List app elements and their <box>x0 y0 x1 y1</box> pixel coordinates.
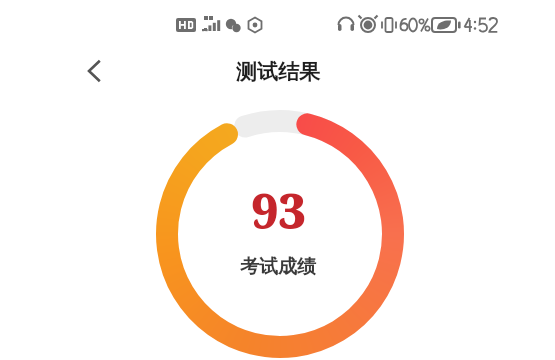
button[interactable]: Back <box>72 48 118 94</box>
staticText: 考试成绩 <box>240 255 316 279</box>
staticText: 测试结果 <box>236 59 320 85</box>
staticText: 93 <box>251 178 306 243</box>
